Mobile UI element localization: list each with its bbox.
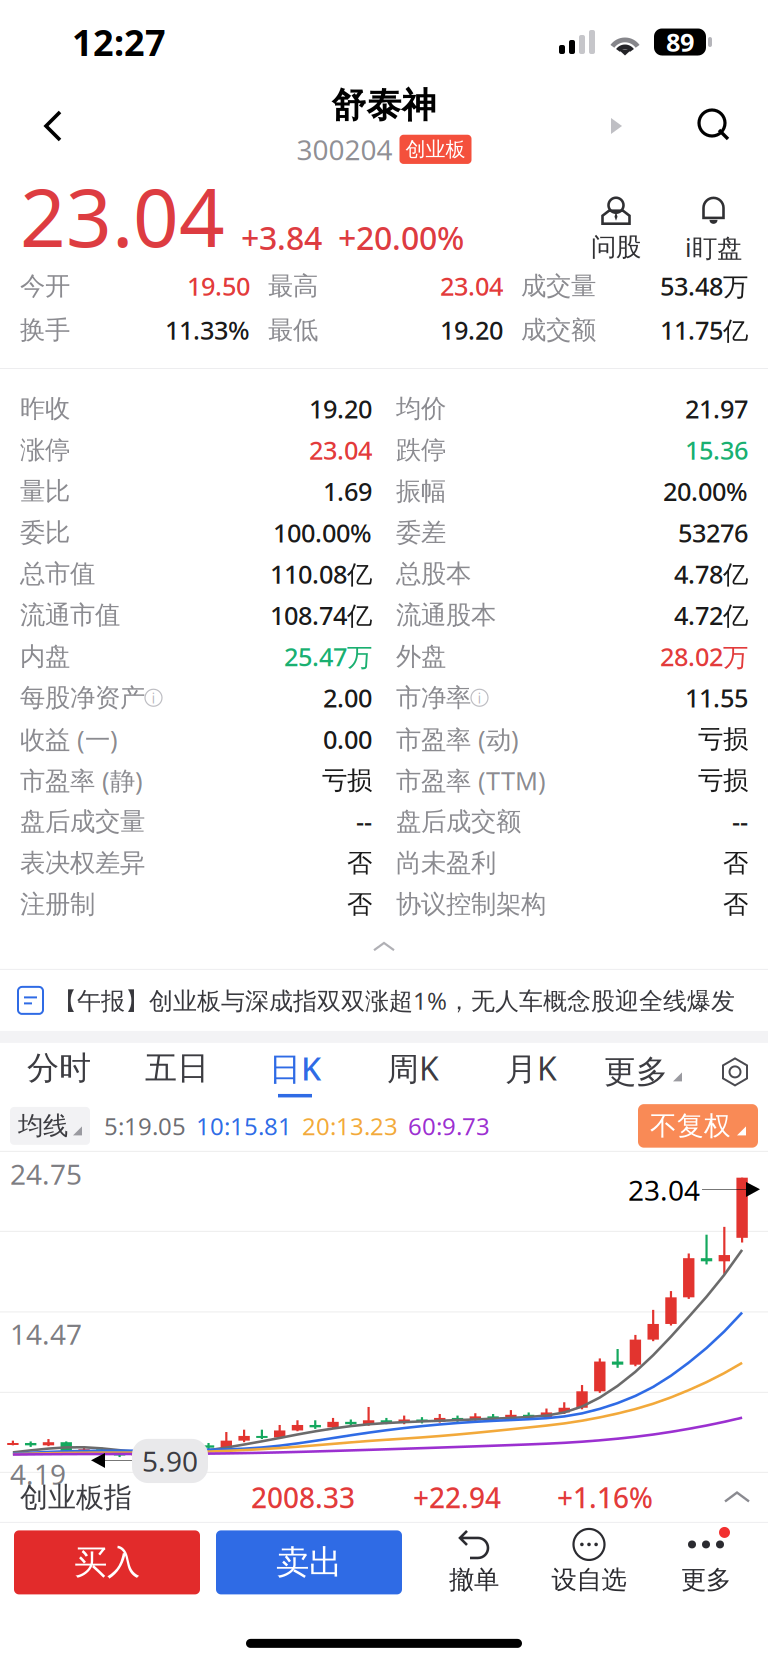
staticText: +20.00%	[322, 216, 464, 259]
staticText: 23.04	[440, 269, 503, 303]
button[interactable]: Settings	[710, 1044, 760, 1100]
button[interactable]: 五日	[118, 1044, 236, 1100]
staticText: 19.50	[187, 269, 250, 303]
button[interactable]: 卖出	[216, 1530, 402, 1594]
staticText: 4.19	[10, 1455, 66, 1493]
staticText: 盘后成交量	[20, 806, 145, 838]
staticText: 市盈率 (静)	[20, 763, 143, 798]
staticText: 总股本	[396, 558, 471, 590]
staticText: 设自选	[551, 1564, 626, 1596]
staticText: 量比	[20, 475, 70, 507]
staticText: 23.04	[628, 1171, 700, 1209]
button[interactable]: 月K	[472, 1044, 590, 1100]
staticText: 11.55	[685, 680, 748, 715]
staticText: 5.90	[142, 1442, 198, 1480]
staticText: 盘后成交额	[396, 806, 521, 838]
staticText: 卖出	[276, 1541, 342, 1583]
staticText: 委差	[396, 517, 446, 548]
staticText: 更多	[681, 1564, 731, 1596]
button[interactable]: 【午报】创业板与深成指双双涨超1%，无人车概念股迎全线爆发	[0, 970, 768, 1031]
staticText: 21.97	[685, 391, 748, 426]
staticText: 委比	[20, 517, 70, 548]
staticText: 10:15.81	[196, 1110, 292, 1142]
staticText: 23.04	[20, 161, 225, 270]
staticText: 成交量	[521, 270, 596, 302]
staticText: 15.36	[685, 433, 748, 467]
staticText: 23.04	[309, 433, 372, 467]
staticText: 更多	[604, 1052, 668, 1092]
staticText: 每股净资产	[20, 682, 145, 714]
staticText: 日K	[269, 1046, 321, 1090]
button[interactable]: 分时	[0, 1044, 118, 1100]
staticText: 表决权差异	[20, 847, 145, 879]
staticText: 最高	[268, 270, 318, 302]
staticText: 流通市值	[20, 599, 120, 631]
staticText: 53.48万	[660, 269, 748, 303]
staticText: 撤单	[449, 1564, 499, 1596]
staticText: 亏损	[698, 764, 748, 796]
staticText: --	[356, 804, 372, 839]
staticText: 否	[347, 888, 372, 920]
staticText: +22.94	[413, 1478, 501, 1516]
staticText: 买入	[74, 1541, 140, 1583]
staticText: 内盘	[20, 640, 70, 672]
staticText: 100.00%	[273, 515, 372, 550]
button[interactable]: Search	[684, 95, 746, 157]
staticText: 2008.33	[251, 1478, 355, 1516]
staticText: 成交额	[521, 314, 596, 346]
staticText: 市净率	[396, 682, 471, 714]
staticText: 外盘	[396, 640, 446, 672]
staticText: 11.75亿	[660, 313, 748, 347]
staticText: 均价	[396, 393, 446, 425]
button[interactable]: 创业板指	[0, 1473, 768, 1522]
staticText: 收益 (一)	[20, 722, 118, 756]
staticText: 月K	[505, 1046, 557, 1090]
button[interactable]: 日K	[236, 1044, 354, 1100]
staticText: --	[732, 804, 748, 839]
staticText: 19.20	[440, 313, 503, 347]
staticText: 24.75	[10, 1155, 82, 1193]
button[interactable]: 均线	[10, 1107, 90, 1145]
button[interactable]: 周K	[354, 1044, 472, 1100]
staticText: +1.16%	[557, 1478, 653, 1516]
staticText: 创业板指	[20, 1480, 132, 1515]
staticText: 最低	[268, 314, 318, 346]
staticText: 舒泰神	[331, 84, 436, 127]
button[interactable]: 撤单	[420, 1529, 528, 1596]
staticText: 2.00	[323, 680, 372, 715]
staticText: 20:13.23	[302, 1110, 398, 1142]
staticText: 53276	[678, 515, 748, 550]
staticText: 市盈率 (动)	[396, 722, 519, 756]
staticText: 五日	[145, 1048, 209, 1088]
staticText: 4.78亿	[674, 557, 748, 591]
staticText: 周K	[387, 1046, 439, 1090]
button[interactable]: 不复权	[638, 1104, 758, 1148]
staticText: 89	[666, 25, 694, 59]
staticText: 20.00%	[663, 474, 748, 508]
staticText: i	[151, 688, 155, 708]
staticText: 创业板	[405, 137, 465, 162]
button[interactable]: 设自选	[528, 1529, 650, 1596]
staticText: 否	[723, 847, 748, 879]
staticText: 跌停	[396, 434, 446, 466]
staticText: 不复权	[650, 1109, 731, 1143]
staticText: 0.00	[323, 722, 372, 756]
staticText: 11.33%	[165, 313, 250, 347]
staticText: 总市值	[20, 558, 95, 590]
staticText: 否	[723, 888, 748, 920]
staticText: 14.47	[10, 1315, 82, 1353]
button[interactable]: 买入	[14, 1530, 200, 1594]
staticText: 分时	[27, 1048, 91, 1088]
button[interactable]: i盯盘	[685, 196, 742, 264]
button[interactable]: Back	[22, 95, 84, 157]
button[interactable]: 问股	[591, 197, 641, 263]
staticText: 今开	[20, 270, 70, 302]
staticText: 4.72亿	[674, 598, 748, 632]
staticText: 均线	[18, 1110, 68, 1142]
button[interactable]: 更多	[590, 1044, 696, 1100]
staticText: 28.02万	[660, 639, 748, 674]
staticText: 60:9.73	[408, 1110, 490, 1142]
staticText: 注册制	[20, 888, 95, 920]
button[interactable]: 更多	[650, 1529, 762, 1596]
